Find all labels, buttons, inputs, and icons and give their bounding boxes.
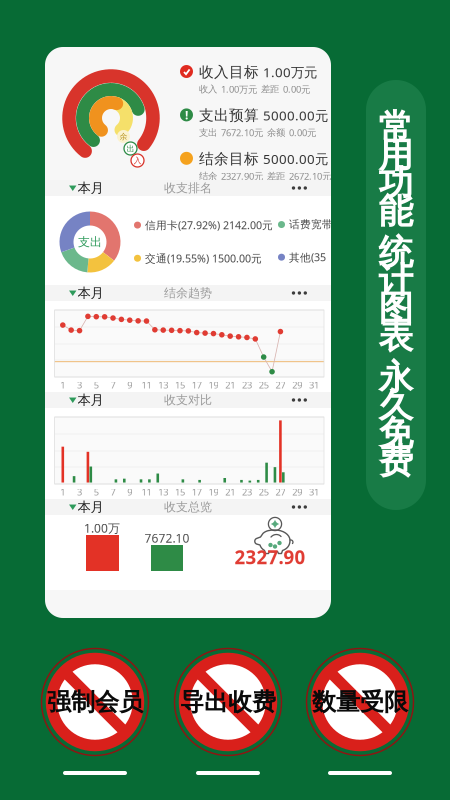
staticText: 图: [378, 287, 413, 330]
staticText: 0.00元: [289, 126, 316, 139]
button[interactable]: 导出收费: [172, 646, 284, 758]
staticText: !: [185, 107, 188, 123]
staticText: 21: [225, 486, 235, 498]
staticText: 23: [242, 379, 252, 391]
staticText: 收支总览: [164, 500, 212, 514]
button[interactable]: 本月: [45, 285, 111, 301]
staticText: 29: [292, 486, 302, 498]
button[interactable]: More options: [265, 180, 331, 196]
staticText: 用: [378, 134, 413, 177]
button[interactable]: 本月: [45, 180, 111, 196]
button[interactable]: More options: [265, 285, 331, 301]
staticText: 余: [119, 132, 127, 141]
staticText: 常: [378, 106, 413, 149]
staticText: 31: [309, 486, 319, 498]
staticText: 余额: [267, 127, 285, 138]
staticText: 数量受限: [312, 687, 408, 717]
staticText: 7: [110, 486, 115, 498]
staticText: 11: [141, 379, 151, 391]
staticText: 收入目标: [199, 63, 259, 81]
staticText: 收支排名: [164, 181, 212, 195]
staticText: 本月: [77, 392, 103, 408]
staticText: 强制会员: [47, 687, 143, 717]
staticText: 表: [378, 315, 413, 358]
staticText: 2327.90元: [221, 170, 263, 182]
staticText: 本月: [77, 499, 103, 515]
staticText: 15: [175, 379, 185, 391]
staticText: 17: [192, 486, 202, 498]
staticText: 能: [378, 190, 413, 233]
staticText: 差距: [267, 170, 285, 182]
staticText: 结余目标: [199, 150, 259, 168]
staticText: 5000.00元: [263, 107, 328, 124]
staticText: 27: [275, 486, 285, 498]
staticText: 13: [158, 379, 168, 391]
staticText: 7672.10: [144, 530, 189, 546]
staticText: 5000.00元: [263, 150, 328, 168]
staticText: 1: [60, 486, 65, 498]
staticText: 结余趋势: [164, 286, 212, 300]
staticText: 3: [77, 379, 82, 391]
button[interactable]: 本月: [45, 499, 111, 515]
button[interactable]: More options: [265, 392, 331, 408]
staticText: 17: [192, 379, 202, 391]
staticText: 久: [378, 384, 413, 427]
staticText: 5: [94, 486, 99, 498]
staticText: 25: [259, 486, 269, 498]
staticText: 1.00万: [84, 520, 120, 536]
staticText: 31: [309, 379, 319, 391]
staticText: 7672.10元: [221, 126, 263, 139]
staticText: 29: [292, 379, 302, 391]
staticText: 本月: [77, 285, 103, 301]
staticText: 计: [378, 259, 413, 302]
staticText: 7: [110, 379, 115, 391]
staticText: 交通(19.55%) 1500.00元: [145, 251, 262, 265]
staticText: 功: [378, 162, 413, 205]
button[interactable]: 强制会员: [39, 646, 151, 758]
staticText: 19: [208, 486, 218, 498]
staticText: 11: [141, 486, 151, 498]
staticText: 1: [60, 379, 65, 391]
staticText: 21: [225, 379, 235, 391]
staticText: 其他(35: [289, 250, 326, 264]
staticText: 5: [94, 379, 99, 391]
staticText: 支出: [199, 127, 217, 138]
staticText: 9: [127, 379, 132, 391]
staticText: 永: [378, 356, 413, 399]
staticText: 话费宽带: [289, 218, 333, 231]
staticText: 13: [158, 486, 168, 498]
staticText: 9: [127, 486, 132, 498]
staticText: 25: [259, 379, 269, 391]
staticText: 0.00元: [283, 83, 310, 95]
staticText: 19: [208, 379, 218, 391]
staticText: 费: [378, 440, 413, 483]
staticText: 支出: [78, 235, 102, 249]
staticText: 结余: [199, 170, 217, 182]
button[interactable]: More options: [265, 499, 331, 515]
staticText: 免: [378, 412, 413, 455]
staticText: 3: [77, 486, 82, 498]
staticText: 差距: [261, 83, 279, 95]
staticText: 1.00万元: [221, 83, 257, 95]
staticText: 导出收费: [180, 687, 276, 717]
staticText: 本月: [77, 180, 103, 196]
staticText: 收入: [199, 83, 217, 95]
staticText: 27: [275, 379, 285, 391]
staticText: 1.00万元: [263, 63, 317, 81]
button[interactable]: 数量受限: [304, 646, 416, 758]
staticText: 支出预算: [199, 106, 259, 124]
staticText: 2672.10元: [289, 170, 331, 182]
staticText: 2327.90: [234, 545, 305, 569]
button[interactable]: 本月: [45, 392, 111, 408]
staticText: 23: [242, 486, 252, 498]
staticText: 入: [133, 156, 141, 165]
staticText: 信用卡(27.92%) 2142.00元: [145, 218, 273, 232]
staticText: 收支对比: [164, 393, 212, 407]
staticText: 15: [175, 486, 185, 498]
staticText: 统: [378, 231, 413, 274]
staticText: 出: [126, 144, 134, 153]
